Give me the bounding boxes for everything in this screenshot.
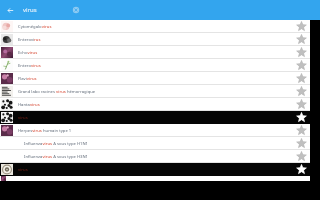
button[interactable]: Flavivirus	[0, 72, 310, 85]
button[interactable]: Favourite	[295, 150, 308, 163]
staticText: Enterovirus	[18, 37, 295, 43]
button[interactable]: Favourite	[295, 46, 308, 59]
button[interactable]: virus	[0, 163, 310, 176]
staticText: Enterovirus	[18, 63, 295, 69]
staticText: Influenzavirus A sous type H3N1	[24, 154, 295, 160]
staticText: Grand labo racines virus hémorragique	[18, 89, 295, 95]
button[interactable]: Favourite	[295, 85, 308, 98]
button[interactable]: Favourite	[295, 98, 308, 111]
button[interactable]	[0, 176, 310, 181]
staticText: Herpesvirus humain type 1	[18, 128, 295, 134]
staticText: Cytomégalovirus	[18, 24, 295, 30]
staticText: virus	[18, 115, 295, 121]
button[interactable]: Favourite	[295, 59, 308, 72]
staticText: Flavivirus	[18, 76, 295, 82]
staticText: virus	[18, 167, 295, 173]
staticText: Echovirus	[18, 50, 295, 56]
button[interactable]: Cytomégalovirus	[0, 20, 310, 33]
button[interactable]: Favourite	[295, 137, 308, 150]
button[interactable]: Favourite	[295, 111, 308, 124]
button[interactable]: Favourite	[295, 20, 308, 33]
button[interactable]: virus	[0, 111, 310, 124]
button[interactable]: Hantavirus	[0, 98, 310, 111]
button[interactable]: Herpesvirus humain type 1	[0, 124, 310, 137]
button[interactable]: Grand labo racines virus hémorragique	[0, 85, 310, 98]
staticText: Influenzavirus A sous type H1N1	[24, 141, 295, 147]
button[interactable]: Clear search	[69, 3, 83, 17]
button[interactable]: Echovirus	[0, 46, 310, 59]
button[interactable]: Favourite	[295, 163, 308, 176]
button[interactable]: Favourite	[295, 72, 308, 85]
button[interactable]: Favourite	[295, 33, 308, 46]
button[interactable]: Enterovirus	[0, 59, 310, 72]
staticText: Hantavirus	[18, 102, 295, 108]
button[interactable]: Back	[3, 3, 17, 17]
button[interactable]: Favourite	[295, 124, 308, 137]
button[interactable]: Influenzavirus A sous type H1N1	[0, 137, 310, 150]
button[interactable]: Influenzavirus A sous type H3N1	[0, 150, 310, 163]
button[interactable]: Enterovirus	[0, 33, 310, 46]
button[interactable]: virus	[23, 6, 37, 14]
